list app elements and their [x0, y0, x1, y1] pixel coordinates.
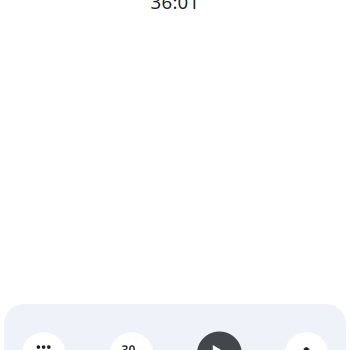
button[interactable]: Play: [197, 331, 242, 350]
staticText: 30: [121, 342, 135, 350]
button[interactable]: More: [22, 332, 65, 350]
button[interactable]: Skip forward 30 seconds: [110, 332, 153, 350]
staticText: 36:01: [150, 0, 199, 14]
button[interactable]: Alerts: [285, 332, 328, 350]
